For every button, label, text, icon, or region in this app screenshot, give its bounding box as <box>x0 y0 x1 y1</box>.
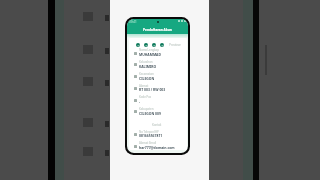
button[interactable]: Step completed <box>152 43 156 47</box>
staticText: Kontak <box>152 123 162 127</box>
button[interactable]: KALIMIRO <box>139 64 157 69</box>
staticText: - <box>139 99 141 104</box>
staticText: Preview <box>169 43 181 47</box>
button[interactable]: RT 003 / RW 003 <box>139 87 166 92</box>
other: Kelurahan <box>134 63 137 66</box>
button[interactable]: CILEGON 009 <box>139 111 161 116</box>
button[interactable]: - <box>139 99 141 104</box>
staticText: 09:41 <box>129 20 137 24</box>
staticText: KALIMIRO <box>139 64 157 69</box>
button[interactable]: Step completed <box>136 43 140 47</box>
staticText: CILEGON 009 <box>139 111 161 116</box>
staticText: Alamat <box>139 84 149 88</box>
other: Kabupaten <box>134 110 137 113</box>
other: Kecamatan <box>134 75 137 78</box>
staticText: Kode Pos <box>139 95 152 99</box>
staticText: Kabupaten <box>139 107 154 111</box>
staticText: Kelurahan <box>139 60 153 64</box>
other: No Telepon/HP <box>134 133 137 136</box>
staticText: Kecamatan <box>139 72 154 76</box>
button[interactable]: Step completed <box>160 43 164 47</box>
staticText: CILEGON <box>139 76 155 81</box>
staticText: Pendaftaran Akun <box>143 28 172 32</box>
other: Alamat <box>134 87 137 90</box>
staticText: Nama Lengkap <box>139 48 159 52</box>
button[interactable]: MUHAMMAD <box>139 52 161 57</box>
other: Kode Pos <box>134 99 137 102</box>
button[interactable]: Pendaftaran Akun <box>127 26 188 34</box>
staticText: No Telepon/HP <box>139 130 159 134</box>
button[interactable]: Step completed <box>144 43 148 47</box>
staticText: MUHAMMAD <box>139 52 161 57</box>
staticText: Alamat Email <box>139 141 157 145</box>
button[interactable]: 081665567811 <box>139 133 163 138</box>
other: Nama Lengkap <box>134 52 137 55</box>
staticText: har777@domain.com <box>139 145 175 150</box>
button[interactable]: har777@domain.com <box>139 145 175 150</box>
staticText: RT 003 / RW 003 <box>139 87 166 92</box>
staticText: 081665567811 <box>139 133 163 138</box>
other: Alamat Email <box>134 145 137 148</box>
button[interactable]: CILEGON <box>139 76 155 81</box>
